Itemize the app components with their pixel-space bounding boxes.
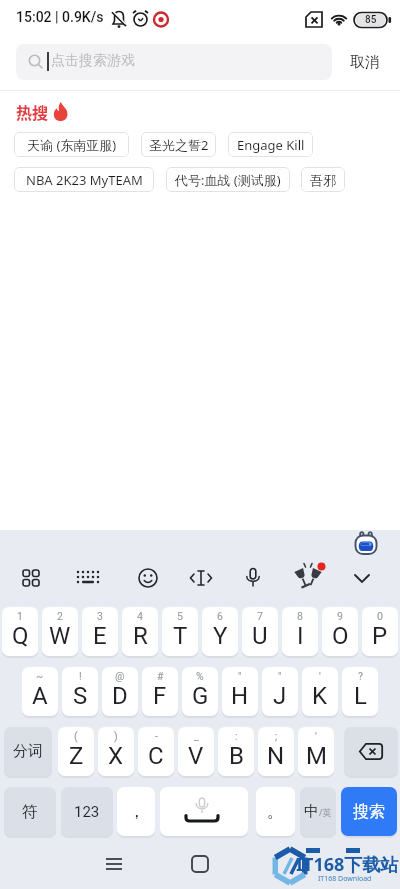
button[interactable]: ~ [22,667,58,716]
staticText: @ [115,670,125,682]
button[interactable]: 。 [256,787,295,836]
button[interactable] [94,845,134,885]
staticText: 8 [297,610,303,622]
staticText: J [273,682,287,710]
staticText: IT168 Download [318,874,372,884]
staticText: 7 [257,610,263,622]
button[interactable]: 点击搜索游戏 [16,44,332,80]
button[interactable]: " [222,667,258,716]
staticText: 符 [22,802,38,822]
button[interactable]: 123 [61,787,113,836]
staticText: 热搜 [16,100,49,123]
button[interactable]: 5 [162,607,198,656]
staticText: 9 [337,610,343,622]
button[interactable]: % [182,667,218,716]
staticText: B [229,742,244,770]
button[interactable]: 吾邪 [301,167,345,192]
staticText: 4 [137,610,143,622]
button[interactable] [354,530,378,555]
staticText: " [238,670,242,682]
staticText: 搜索 [353,802,385,822]
button[interactable]: ) [98,727,134,776]
staticText: ' [315,730,317,742]
button[interactable] [289,559,327,597]
staticText: K [312,682,328,710]
button[interactable]: 2 [42,607,78,656]
button[interactable] [182,559,220,597]
staticText: O [332,622,349,650]
button[interactable]: # [142,667,178,716]
button[interactable]: 9 [322,607,358,656]
button[interactable] [344,727,398,776]
staticText: 2 [57,610,63,622]
button[interactable]: 搜索 [341,787,397,836]
button[interactable] [180,845,220,885]
staticText: N [267,742,285,770]
staticText: E [93,622,107,650]
staticText: S [73,682,88,710]
staticText: 5 [177,610,183,622]
staticText: 中 [304,802,319,821]
button[interactable]: ; [258,727,294,776]
button[interactable] [12,559,50,597]
button[interactable] [69,559,107,597]
button[interactable] [343,559,381,597]
staticText: W [49,622,71,650]
button[interactable]: Engage Kill [228,132,313,157]
button[interactable]: 7 [242,607,278,656]
staticText: % [196,670,204,682]
button[interactable]: 0 [362,607,398,656]
button[interactable]: 8 [282,607,318,656]
staticText: ) [114,730,118,742]
staticText: IT168下载站 [296,852,399,877]
staticText: ! [79,670,82,682]
staticText: H [231,682,249,710]
button[interactable]: @ [102,667,138,716]
staticText: 0 [377,610,383,622]
staticText: Y [213,622,228,650]
button[interactable]: 3 [82,607,118,656]
button[interactable]: 天谕 (东南亚服) [14,132,129,157]
button[interactable]: 取消 [340,44,390,80]
staticText: Z [69,742,84,770]
button[interactable]: ( [58,727,94,776]
button[interactable]: ! [62,667,98,716]
staticText: 取消 [350,53,380,72]
staticText: 分词 [13,742,43,761]
staticText: _ [194,730,199,742]
button[interactable]: 中 [300,787,336,836]
staticText: Engage Kill [237,136,305,154]
staticText: ， [128,801,145,822]
button[interactable]: ' [302,667,338,716]
button[interactable] [234,559,272,597]
staticText: 代号:血战 (测试服) [175,171,281,189]
button[interactable]: : [218,727,254,776]
button[interactable]: - [138,727,174,776]
button[interactable]: 代号:血战 (测试服) [166,167,290,192]
button[interactable]: _ [178,727,214,776]
button[interactable]: 圣光之誓2 [141,132,216,157]
staticText: Q [12,622,29,650]
staticText: 1 [17,610,23,622]
button[interactable]: 4 [122,607,158,656]
button[interactable] [129,559,167,597]
button[interactable]: " [262,667,298,716]
button[interactable]: ， [117,787,155,836]
button[interactable]: 6 [202,607,238,656]
button[interactable]: 符 [4,787,56,836]
staticText: D [112,682,128,710]
staticText: T [173,622,188,650]
staticText: 点击搜索游戏 [51,52,135,70]
button[interactable]: NBA 2K23 MyTEAM [14,167,154,192]
staticText: R [133,622,148,650]
button[interactable] [160,787,248,836]
staticText: V [188,742,204,770]
staticText: ~ [36,670,44,682]
staticText: ' [319,670,321,682]
button[interactable]: ' [298,727,334,776]
button[interactable]: 1 [2,607,38,656]
button[interactable]: 分词 [4,727,52,776]
staticText: U [252,622,268,650]
staticText: 。 [267,801,284,822]
button[interactable]: ? [342,667,378,716]
